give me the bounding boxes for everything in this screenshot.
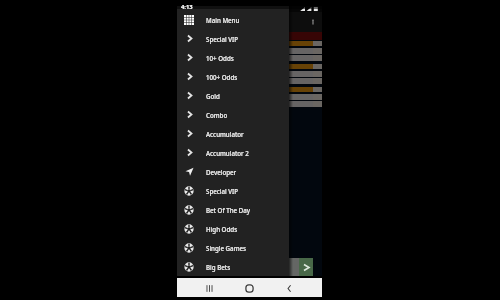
- button[interactable]: [177, 87, 322, 92]
- button[interactable]: Recent apps: [201, 280, 217, 296]
- button[interactable]: Next: [299, 258, 313, 277]
- button[interactable]: Main Menu: [177, 10, 289, 29]
- button[interactable]: [177, 41, 322, 46]
- button[interactable]: Special VIP: [177, 181, 289, 200]
- button[interactable]: Accumulator: [177, 124, 289, 143]
- staticText: Accumulator: [206, 130, 244, 138]
- button[interactable]: Bet Of The Day: [177, 200, 289, 219]
- staticText: Big Bets: [206, 263, 231, 271]
- button[interactable]: [177, 64, 322, 69]
- staticText: Bet Of The Day: [206, 206, 251, 214]
- button[interactable]: Home: [241, 280, 257, 296]
- button[interactable]: Single Games: [177, 238, 289, 257]
- button[interactable]: Developer: [177, 162, 289, 181]
- button[interactable]: 10+ Odds: [177, 48, 289, 67]
- button[interactable]: 100+ Odds: [177, 67, 289, 86]
- staticText: Single Games: [206, 244, 247, 252]
- button[interactable]: [177, 71, 322, 77]
- button[interactable]: Big Bets: [177, 257, 289, 276]
- staticText: 4:13: [181, 3, 193, 11]
- button[interactable]: [177, 94, 322, 100]
- staticText: Special VIP: [206, 187, 239, 195]
- staticText: 10+ Odds: [206, 54, 234, 62]
- staticText: Gold: [206, 92, 220, 100]
- staticText: High Odds: [206, 225, 238, 233]
- button[interactable]: Back: [281, 280, 297, 296]
- staticText: 100+ Odds: [206, 73, 238, 81]
- staticText: Special VIP: [206, 35, 239, 43]
- staticText: Developer: [206, 168, 237, 176]
- staticText: Combo: [206, 111, 228, 119]
- button[interactable]: Gold: [177, 86, 289, 105]
- button[interactable]: Special VIP: [177, 29, 289, 48]
- button[interactable]: More options: [308, 17, 318, 27]
- button[interactable]: [177, 48, 322, 54]
- button[interactable]: High Odds: [177, 219, 289, 238]
- staticText: Main Menu: [206, 16, 240, 24]
- button[interactable]: Accumulator 2: [177, 143, 289, 162]
- button[interactable]: [177, 55, 322, 61]
- staticText: Accumulator 2: [206, 149, 249, 157]
- button[interactable]: [177, 101, 322, 107]
- button[interactable]: [177, 78, 322, 84]
- button[interactable]: Combo: [177, 105, 289, 124]
